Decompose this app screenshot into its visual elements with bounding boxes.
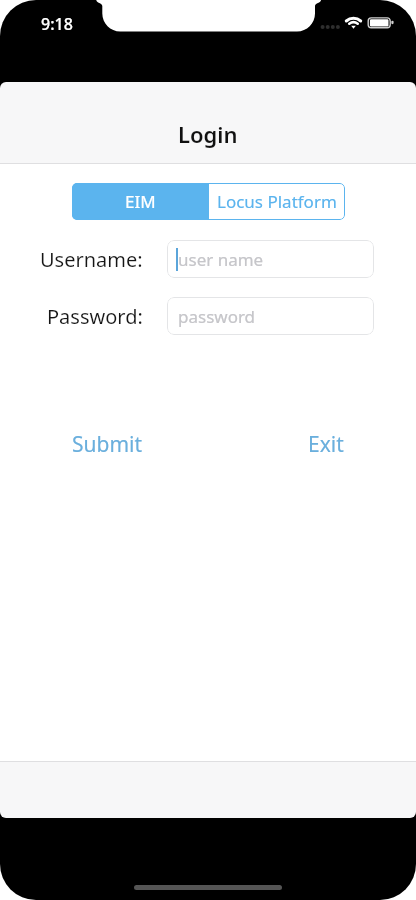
staticText: EIM	[125, 190, 156, 213]
staticText: Username:	[40, 246, 143, 273]
staticText: 9:18	[41, 13, 73, 35]
button[interactable]: Locus Platform	[209, 183, 345, 220]
other: Home indicator	[134, 885, 282, 890]
button[interactable]: Username: text field	[167, 240, 374, 278]
button[interactable]: Submit	[68, 426, 147, 463]
staticText: Submit	[72, 430, 143, 459]
button[interactable]: EIM	[72, 183, 209, 220]
staticText: password	[178, 305, 256, 328]
staticText: Login	[178, 119, 238, 149]
staticText: user name	[178, 248, 264, 271]
button[interactable]: Password: text field	[167, 297, 374, 335]
other: Signal, Wi-Fi and battery status	[316, 14, 396, 32]
staticText: Locus Platform	[217, 190, 337, 213]
staticText: Exit	[308, 430, 344, 459]
staticText: Password:	[47, 303, 143, 330]
button[interactable]: Exit	[304, 426, 348, 463]
